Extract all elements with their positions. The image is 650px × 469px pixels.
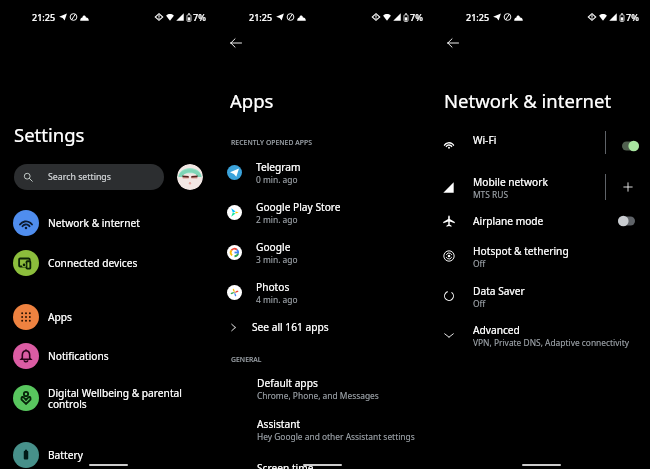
button[interactable]: Turn off (620, 140, 641, 152)
staticText: MTS RUS (473, 189, 509, 200)
staticText: 4 min. ago (256, 294, 298, 305)
staticText: Network & internet (444, 88, 612, 113)
staticText: Battery (48, 448, 83, 462)
staticText: 2 min. ago (256, 214, 298, 225)
staticText: 21:25 (249, 11, 273, 23)
staticText: Apps (48, 310, 72, 324)
staticText: 7% (193, 11, 206, 23)
button[interactable]: Telegram (217, 154, 434, 190)
staticText: Assistant (257, 417, 301, 431)
button[interactable]: Google (217, 234, 434, 270)
button[interactable]: Wi-Fi (434, 134, 650, 158)
button[interactable]: Connected devices (0, 243, 217, 283)
staticText: Advanced (473, 323, 520, 337)
staticText: GENERAL (231, 355, 262, 364)
button[interactable]: Back (443, 33, 463, 53)
staticText: 7% (410, 11, 423, 23)
staticText: Default apps (257, 376, 318, 390)
staticText: Screen time (257, 461, 314, 469)
button[interactable]: Default apps (257, 376, 435, 401)
staticText: 7% (626, 11, 639, 23)
button[interactable]: Assistant (257, 417, 435, 442)
button[interactable]: Network & internet (0, 203, 217, 243)
button[interactable]: Google Play Store (217, 194, 434, 230)
staticText: Off (473, 298, 486, 309)
staticText: RECENTLY OPENED APPS (231, 138, 312, 147)
button[interactable]: Account (177, 164, 203, 190)
staticText: Airplane mode (473, 214, 544, 228)
staticText: Google Play Store (256, 200, 341, 214)
staticText: Connected devices (48, 256, 138, 270)
button[interactable]: Photos (217, 274, 434, 310)
staticText: Search settings (48, 171, 111, 183)
staticText: Google (256, 240, 291, 254)
button[interactable]: Mobile network (434, 174, 650, 200)
button[interactable]: Screen time (257, 461, 435, 469)
button[interactable]: Hotspot & tethering (434, 243, 650, 269)
button[interactable]: Notifications (0, 336, 217, 376)
staticText: Chrome, Phone, and Messages (257, 390, 379, 401)
button[interactable]: Search settings (14, 164, 164, 190)
button[interactable]: Data Saver (434, 283, 650, 309)
button[interactable]: Digital Wellbeing & parental controls (0, 378, 217, 418)
staticText: Photos (256, 280, 290, 294)
staticText: Apps (230, 88, 274, 113)
button[interactable]: Airplane mode (434, 208, 650, 234)
staticText: Mobile network (473, 175, 548, 189)
button[interactable]: Battery (0, 435, 217, 469)
button[interactable]: See all 161 apps (217, 314, 434, 340)
button[interactable]: Add network (623, 182, 633, 192)
staticText: Network & internet (48, 216, 141, 230)
staticText: Data Saver (473, 284, 525, 298)
staticText: 3 min. ago (256, 254, 298, 265)
staticText: 21:25 (466, 11, 490, 23)
staticText: Settings (14, 122, 85, 147)
staticText: VPN, Private DNS, Adaptive connectivity (473, 337, 629, 348)
staticText: Off (473, 258, 486, 269)
staticText: Telegram (256, 160, 301, 174)
staticText: 21:25 (32, 11, 56, 23)
button[interactable]: Turn on (616, 215, 637, 227)
button[interactable]: Back (226, 33, 246, 53)
staticText: Hotspot & tethering (473, 244, 569, 258)
staticText: Wi-Fi (473, 133, 497, 147)
button[interactable]: Apps (0, 297, 217, 337)
staticText: 0 min. ago (256, 174, 298, 185)
staticText: Digital Wellbeing & parental controls (48, 386, 182, 411)
staticText: Notifications (48, 349, 109, 363)
staticText: See all 161 apps (252, 320, 329, 334)
button[interactable]: Advanced (434, 322, 650, 348)
staticText: Hey Google and other Assistant settings (257, 431, 415, 442)
